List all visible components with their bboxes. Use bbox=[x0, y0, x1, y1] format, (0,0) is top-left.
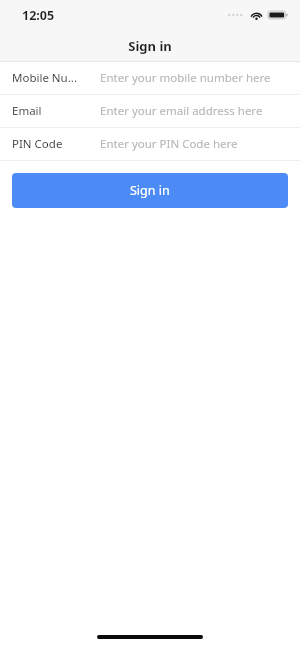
staticText: Sign in bbox=[130, 182, 170, 199]
staticText: Mobile Nu... bbox=[12, 70, 77, 86]
staticText: Sign in bbox=[128, 37, 172, 55]
staticText: 12:05 bbox=[22, 7, 55, 24]
staticText: Enter your email address here bbox=[100, 103, 263, 119]
button[interactable]: PIN Code bbox=[0, 128, 300, 160]
staticText: PIN Code bbox=[12, 136, 63, 152]
staticText: Enter your PIN Code here bbox=[100, 136, 238, 152]
button[interactable]: Email bbox=[0, 95, 300, 127]
staticText: Enter your mobile number here bbox=[100, 70, 271, 86]
button[interactable]: Sign in bbox=[12, 173, 288, 208]
staticText: Email bbox=[12, 103, 42, 119]
button[interactable]: Mobile Nu... bbox=[0, 62, 300, 94]
